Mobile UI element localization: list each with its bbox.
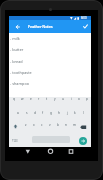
staticText: h: [58, 111, 60, 115]
button[interactable]: u: [59, 96, 67, 102]
staticText: - bread: [10, 59, 23, 64]
staticText: - toothpaste: [10, 70, 32, 75]
staticText: b: [57, 123, 59, 127]
staticText: j: [67, 111, 68, 115]
button[interactable]: - butter: [10, 47, 70, 52]
button[interactable]: [83, 24, 88, 29]
button[interactable]: k: [71, 110, 79, 116]
staticText: c: [41, 123, 43, 127]
button[interactable]: [79, 137, 87, 145]
staticText: Feather Notes: [28, 24, 53, 29]
button[interactable]: [45, 147, 56, 158]
staticText: - shampoo: [10, 81, 29, 86]
button[interactable]: [13, 124, 18, 129]
button[interactable]: o: [75, 96, 83, 102]
staticText: i: [71, 97, 72, 101]
button[interactable]: q: [9, 96, 18, 102]
button[interactable]: b: [54, 122, 62, 128]
button[interactable]: c: [38, 122, 46, 128]
button[interactable]: t: [43, 96, 51, 102]
staticText: - milk: [10, 36, 20, 41]
staticText: w: [21, 97, 24, 101]
staticText: o: [78, 97, 80, 101]
button[interactable]: r: [35, 96, 43, 102]
staticText: q: [13, 97, 15, 101]
button[interactable]: - milk: [10, 36, 70, 41]
staticText: a: [17, 111, 19, 115]
staticText: f: [42, 111, 44, 115]
button[interactable]: i: [67, 96, 75, 102]
staticText: r: [38, 97, 40, 101]
staticText: y: [54, 97, 56, 101]
staticText: m: [73, 123, 76, 127]
staticText: u: [62, 97, 64, 101]
staticText: n: [65, 123, 67, 127]
button[interactable]: [80, 125, 87, 130]
button[interactable]: j: [63, 110, 71, 116]
button[interactable]: [66, 147, 77, 158]
button[interactable]: h: [55, 110, 63, 116]
button[interactable]: - shampoo: [10, 81, 70, 86]
staticText: l: [83, 111, 84, 115]
button[interactable]: e: [27, 96, 35, 102]
staticText: p: [86, 97, 88, 101]
staticText: t: [46, 97, 48, 101]
button[interactable]: [22, 147, 33, 158]
button[interactable]: n: [62, 122, 70, 128]
staticText: s: [26, 111, 28, 115]
button[interactable]: w: [18, 96, 27, 102]
button[interactable]: a: [13, 110, 22, 116]
staticText: k: [74, 111, 76, 115]
staticText: x: [33, 123, 35, 127]
button[interactable]: y: [51, 96, 59, 102]
button[interactable]: - bread: [10, 59, 70, 64]
staticText: d: [34, 111, 36, 115]
button[interactable]: s: [22, 110, 31, 116]
button[interactable]: - toothpaste: [10, 70, 70, 75]
staticText: e: [30, 97, 32, 101]
button[interactable]: [16, 25, 20, 29]
staticText: z: [25, 123, 27, 127]
button[interactable]: x: [30, 122, 38, 128]
button[interactable]: ?123: [10, 138, 20, 144]
staticText: 8:00: [81, 16, 87, 20]
button[interactable]: p: [83, 96, 91, 102]
button[interactable]: l: [79, 110, 87, 116]
button[interactable]: f: [39, 110, 47, 116]
button[interactable]: m: [70, 122, 78, 128]
button[interactable]: g: [47, 110, 55, 116]
staticText: - butter: [10, 47, 24, 52]
button[interactable]: v: [46, 122, 54, 128]
staticText: ?123: [12, 139, 18, 143]
button[interactable]: d: [31, 110, 39, 116]
staticText: g: [50, 111, 52, 115]
button[interactable]: z: [21, 122, 30, 128]
staticText: v: [49, 123, 51, 127]
